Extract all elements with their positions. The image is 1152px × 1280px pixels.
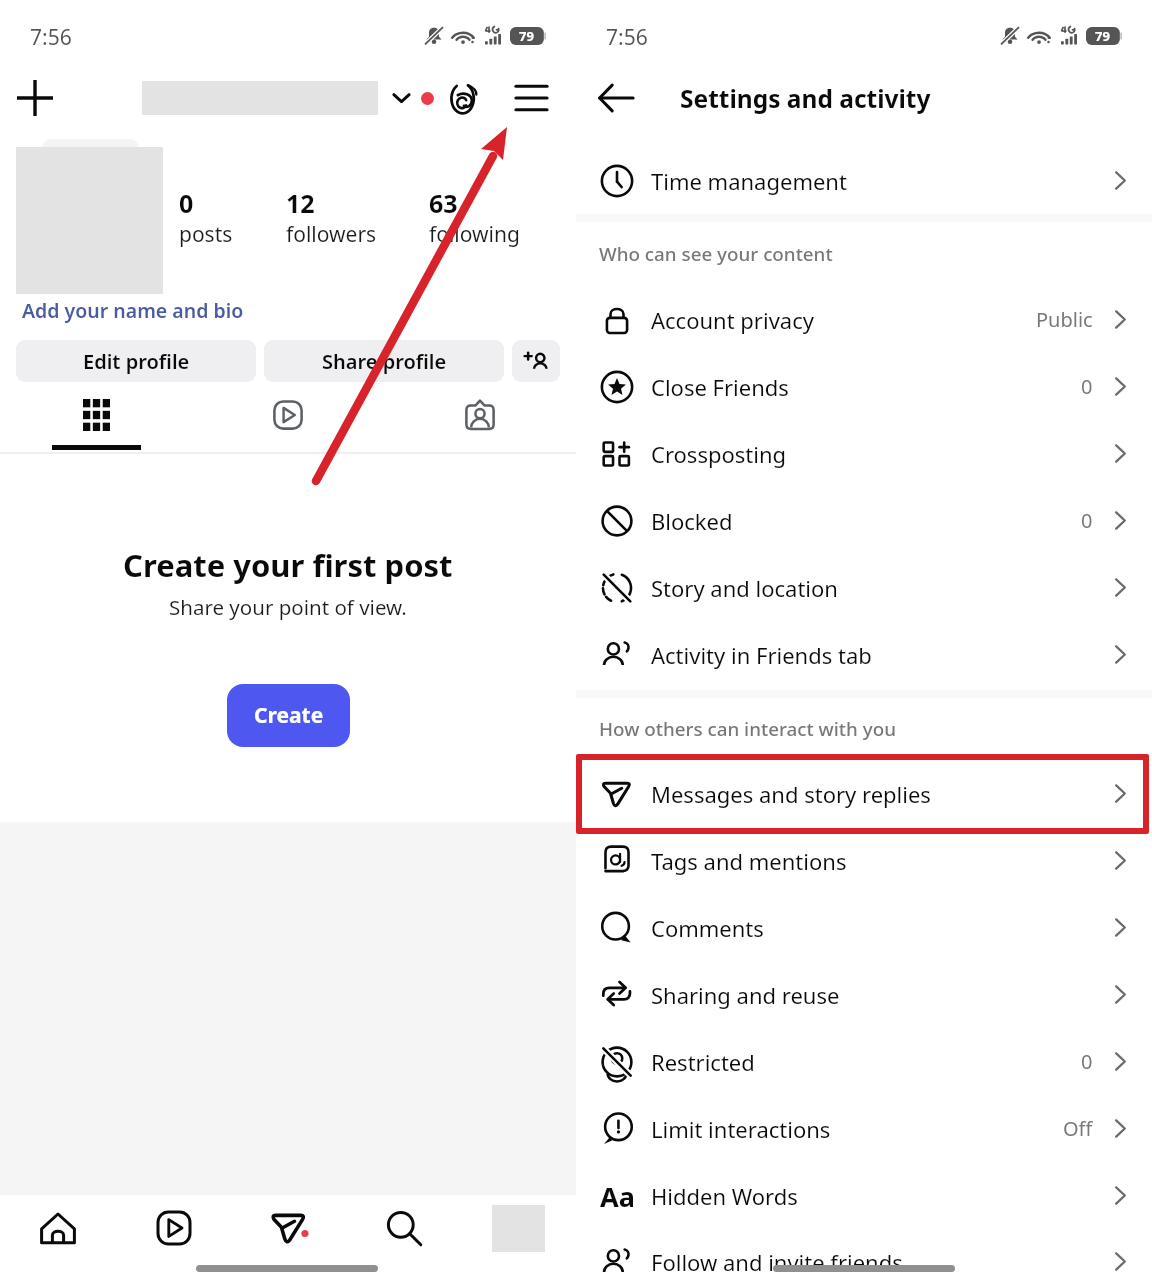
button[interactable]: Follow and invite friends (576, 1243, 1152, 1280)
staticText: Messages and story replies (651, 779, 1107, 809)
button[interactable]: Share profile (264, 340, 504, 382)
button[interactable]: Discover people (512, 340, 560, 382)
staticText: Share profile (322, 348, 447, 375)
button[interactable]: Story and location (576, 554, 1152, 621)
button[interactable]: Menu (508, 75, 554, 121)
button[interactable]: Crossposting (576, 420, 1152, 487)
staticText: 79 (1095, 27, 1110, 45)
staticText: followers (286, 220, 377, 249)
button[interactable]: Messages and story replies (576, 760, 1152, 827)
staticText: Blocked (651, 506, 1081, 536)
button[interactable]: Limit interactions (576, 1095, 1152, 1162)
button[interactable]: Blocked (576, 487, 1152, 554)
staticText: Create (254, 701, 324, 730)
button[interactable]: Switch account (383, 80, 419, 116)
staticText: 12 (286, 186, 315, 220)
button[interactable]: Back (588, 70, 644, 126)
staticText: Comments (651, 913, 1107, 943)
staticText: Sharing and reuse (651, 980, 1107, 1010)
staticText: Who can see your content (599, 241, 833, 267)
staticText: 0 (1081, 1048, 1093, 1075)
staticText: How others can interact with you (599, 716, 896, 742)
staticText: Close Friends (651, 372, 1081, 402)
staticText: Time management (651, 166, 1107, 196)
button[interactable]: Reels (116, 1195, 231, 1261)
button[interactable]: Close Friends (576, 353, 1152, 420)
staticText: Follow and invite friends (651, 1247, 1107, 1277)
button[interactable]: Activity in Friends tab (576, 621, 1152, 688)
button[interactable]: Time management (576, 147, 1152, 214)
button[interactable]: Create (6, 69, 64, 127)
button[interactable]: Aa (576, 1162, 1152, 1229)
button[interactable]: Search (346, 1195, 461, 1261)
button[interactable]: Account privacy (576, 286, 1152, 353)
button[interactable]: 12 (286, 186, 377, 249)
button[interactable]: Profile (461, 1195, 576, 1261)
staticText: Hidden Words (651, 1181, 1107, 1211)
staticText: Limit interactions (651, 1114, 1063, 1144)
button[interactable]: Reels (192, 391, 384, 439)
staticText: following (429, 220, 520, 249)
staticText: Crossposting (651, 439, 1107, 469)
button[interactable]: Create (227, 684, 350, 747)
staticText: Add your name and bio (22, 297, 244, 324)
staticText: 0 (1081, 373, 1093, 400)
staticText: Aa (600, 1178, 635, 1214)
staticText: Public (1036, 306, 1093, 333)
button[interactable]: 63 (429, 186, 520, 249)
staticText: 79 (519, 27, 534, 45)
staticText: Tags and mentions (651, 846, 1107, 876)
staticText: 7:56 (606, 23, 648, 52)
staticText: 0 (1081, 507, 1093, 534)
staticText: 63 (429, 186, 458, 220)
staticText: Create your first post (123, 544, 453, 586)
button[interactable]: Tagged (384, 391, 576, 439)
staticText: Share your point of view. (169, 593, 407, 621)
staticText: Edit profile (83, 348, 190, 375)
button[interactable]: Edit profile (16, 340, 256, 382)
button[interactable]: Restricted (576, 1028, 1152, 1095)
staticText: Off (1063, 1115, 1093, 1142)
button[interactable]: Threads (442, 76, 486, 120)
staticText: Restricted (651, 1047, 1081, 1077)
button[interactable]: Sharing and reuse (576, 961, 1152, 1028)
staticText: Account privacy (651, 305, 1036, 335)
staticText: 7:56 (30, 23, 72, 52)
button[interactable]: Comments (576, 894, 1152, 961)
staticText: Activity in Friends tab (651, 640, 1107, 670)
staticText: Settings and activity (680, 82, 931, 115)
button[interactable]: Messages (231, 1195, 346, 1261)
button[interactable]: 0 (179, 186, 233, 249)
staticText: Story and location (651, 573, 1107, 603)
staticText: 0 (179, 186, 194, 220)
button[interactable]: Home (0, 1195, 116, 1261)
staticText: posts (179, 220, 233, 249)
button[interactable]: Posts grid (0, 391, 192, 439)
button[interactable]: Tags and mentions (576, 827, 1152, 894)
